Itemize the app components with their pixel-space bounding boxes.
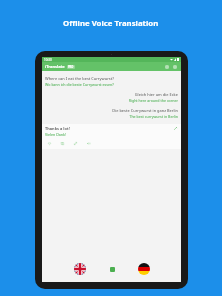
button[interactable]: Play audio — [85, 140, 91, 146]
button[interactable]: Favorite — [46, 140, 52, 146]
button[interactable]: Microphone — [108, 265, 116, 273]
staticText: Right here around the corner — [128, 98, 178, 103]
staticText: Offline Voice Translation — [63, 18, 159, 29]
button[interactable]: Edit — [173, 126, 178, 131]
staticText: Vielen Dank! — [45, 132, 66, 137]
staticText: Die beste Currywurst in ganz Berlin — [112, 108, 178, 113]
button[interactable]: English — [74, 263, 86, 275]
button[interactable]: More options — [172, 64, 178, 70]
staticText: Wo kann ich die beste Currywurst essen? — [45, 82, 114, 87]
button[interactable]: Copy — [59, 140, 65, 146]
button[interactable]: Fullscreen — [72, 140, 78, 146]
button[interactable]: Settings — [164, 64, 170, 70]
button[interactable]: Thanks a lot! — [42, 124, 181, 149]
button[interactable]: Where can I eat the best Currywurst? — [42, 71, 181, 87]
staticText: The best currywurst in Berlin — [129, 114, 178, 119]
staticText: iTranslate — [45, 64, 65, 69]
button[interactable]: German — [138, 263, 150, 275]
staticText: PRO — [68, 65, 74, 69]
staticText: Gleich hier um die Ecke — [134, 92, 178, 97]
staticText: 10:30 — [44, 58, 52, 62]
staticText: Thanks a lot! — [45, 126, 70, 131]
button[interactable]: Die beste Currywurst in ganz Berlin — [42, 108, 181, 119]
button[interactable]: Gleich hier um die Ecke — [42, 92, 181, 103]
staticText: Where can I eat the best Currywurst? — [45, 76, 114, 81]
